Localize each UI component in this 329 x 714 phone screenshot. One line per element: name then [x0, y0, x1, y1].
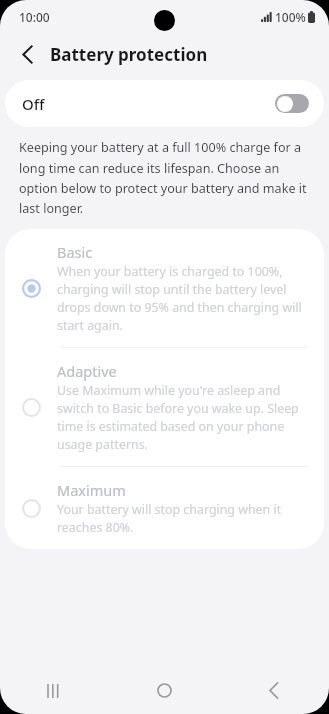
button[interactable]: Maximum: [5, 467, 324, 549]
staticText: Keeping your battery at a full 100% char…: [19, 139, 307, 216]
staticText: 10:00: [19, 9, 50, 25]
staticText: When your battery is charged to 100%, ch…: [57, 263, 308, 334]
staticText: Basic: [57, 242, 93, 262]
staticText: Use Maximum while you're asleep and swit…: [57, 382, 308, 453]
button[interactable]: Home: [109, 667, 219, 714]
button[interactable]: Basic: [5, 229, 324, 347]
staticText: Your battery will stop charging when it …: [57, 501, 308, 536]
staticText: 100%: [275, 9, 306, 25]
staticText: Adaptive: [57, 361, 117, 381]
staticText: Battery protection: [50, 43, 208, 66]
button[interactable]: Back: [8, 35, 46, 73]
button[interactable]: Off: [5, 80, 324, 127]
staticText: Maximum: [57, 480, 126, 500]
button[interactable]: Recents: [0, 667, 109, 714]
button[interactable]: Back: [219, 667, 329, 714]
staticText: Off: [22, 94, 45, 114]
button[interactable]: Adaptive: [5, 348, 324, 466]
